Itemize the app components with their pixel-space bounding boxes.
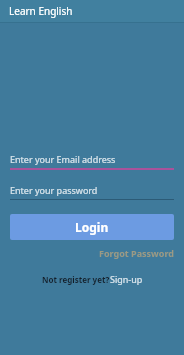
staticText: Login: [75, 219, 109, 235]
button[interactable]: Sign-up: [110, 273, 143, 285]
staticText: Not register yet?: [42, 274, 110, 285]
staticText: Enter your password: [10, 184, 98, 196]
button[interactable]: Enter your password: [10, 181, 174, 199]
staticText: Enter your Email address: [10, 153, 116, 165]
button[interactable]: Login: [10, 214, 174, 240]
staticText: Learn English: [9, 4, 73, 18]
button[interactable]: Enter your Email address: [10, 150, 174, 168]
staticText: Sign-up: [110, 273, 143, 285]
staticText: Forgot Password: [99, 247, 174, 259]
button[interactable]: Forgot Password: [99, 247, 174, 259]
